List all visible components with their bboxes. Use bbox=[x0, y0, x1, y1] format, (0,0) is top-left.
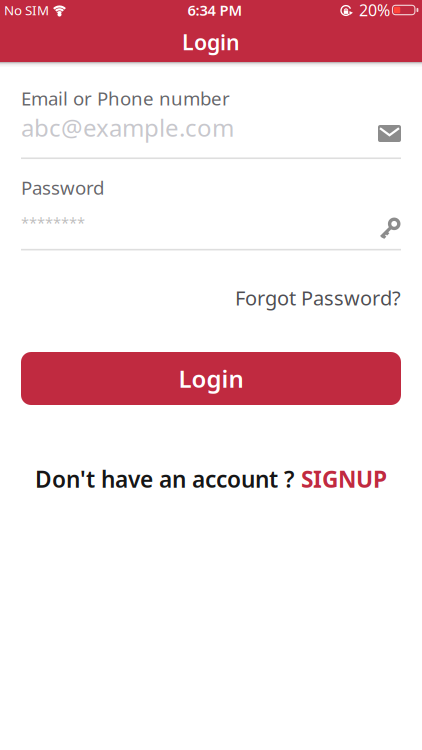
staticText: abc@example.com bbox=[21, 112, 234, 143]
button[interactable]: ******** bbox=[21, 200, 401, 230]
button[interactable]: Login bbox=[21, 352, 401, 405]
staticText: Login bbox=[182, 28, 240, 56]
staticText: ******** bbox=[21, 213, 85, 232]
button[interactable]: Forgot Password? bbox=[235, 284, 401, 311]
staticText: Forgot Password? bbox=[235, 284, 401, 311]
staticText: Email or Phone number bbox=[21, 86, 230, 111]
staticText: SIGNUP bbox=[301, 464, 387, 494]
staticText: 20% bbox=[359, 0, 390, 21]
staticText: Login bbox=[178, 363, 243, 394]
button[interactable]: abc@example.com bbox=[21, 111, 401, 143]
button[interactable]: SIGNUP bbox=[301, 464, 387, 494]
staticText: No SIM bbox=[4, 1, 49, 19]
staticText: Password bbox=[21, 175, 104, 200]
staticText: 6:34 PM bbox=[187, 0, 242, 20]
staticText: Don't have an account ? bbox=[35, 464, 294, 494]
